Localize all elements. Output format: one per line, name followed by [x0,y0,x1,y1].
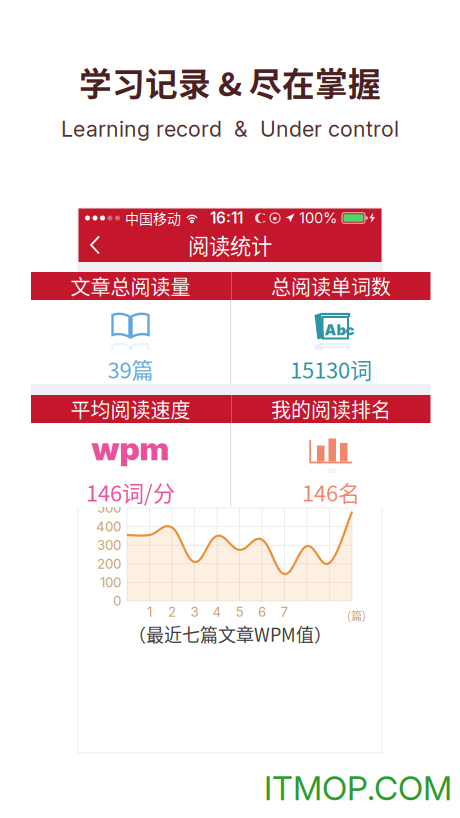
staticText: Abc [324,351,354,369]
staticText: 16:11 [210,209,243,227]
staticText: wpm [91,429,169,468]
staticText: 文章总阅读量 [70,271,190,300]
staticText: 146名 [302,476,360,508]
staticText: 200 [97,556,121,572]
staticText: 146词/分 [86,476,175,508]
staticText: 中国移动 [125,208,181,228]
staticText: ITMOP.COM [264,768,452,808]
staticText: wpm [91,459,169,498]
staticText: 15130词 [290,353,372,385]
staticText: Abc [324,321,354,339]
staticText: 500 [97,500,121,516]
staticText: 7 [280,604,288,620]
staticText: (篇) [347,607,366,623]
staticText: 我的阅读排名 [271,394,391,423]
staticText: 学习记录 & 尽在掌握 [79,58,381,106]
staticText: 4 [212,604,221,620]
staticText: 3 [190,604,198,620]
staticText: 0 [113,593,121,609]
staticText: 300 [97,537,121,553]
staticText: （最近七篇文章WPM值） [128,621,332,647]
staticText: 100% [299,209,337,227]
staticText: 100 [100,574,121,590]
staticText: 400 [96,518,121,535]
staticText: 39篇 [107,353,153,385]
staticText: 阅读统计 [188,230,272,260]
staticText: Learning record & Under control [61,116,399,142]
staticText: 6 [258,604,266,620]
button[interactable]: Back [78,227,112,262]
staticText: 平均阅读速度 [70,394,190,423]
staticText: 总阅读单词数 [271,271,391,300]
staticText: 5 [235,604,243,620]
staticText: 1 [147,604,152,620]
staticText: 2 [168,604,176,620]
